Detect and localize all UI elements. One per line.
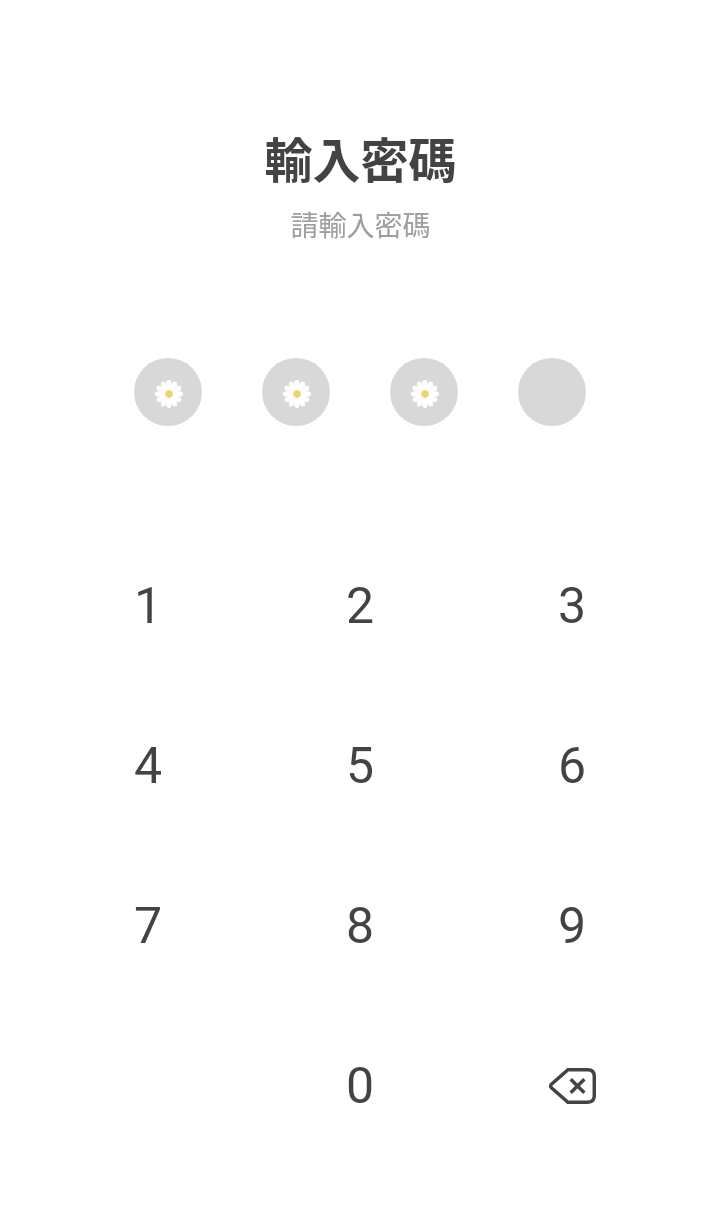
- staticText: 8: [346, 897, 375, 956]
- staticText: 9: [558, 897, 587, 956]
- button[interactable]: 7: [42, 846, 254, 1006]
- staticText: 2: [346, 577, 375, 636]
- button[interactable]: 2: [254, 526, 466, 686]
- button[interactable]: 0: [254, 1006, 466, 1166]
- other: Backspace: [548, 1068, 596, 1104]
- staticText: 5: [346, 737, 375, 796]
- button[interactable]: 1: [42, 526, 254, 686]
- button[interactable]: 4: [42, 686, 254, 846]
- staticText: 請輸入密碼: [290, 204, 431, 245]
- staticText: 7: [134, 897, 163, 956]
- staticText: 3: [558, 577, 587, 636]
- button[interactable]: 3: [466, 526, 678, 686]
- staticText: 1: [134, 577, 163, 636]
- staticText: 輸入密碼: [264, 122, 457, 192]
- button[interactable]: 9: [466, 846, 678, 1006]
- button[interactable]: 8: [254, 846, 466, 1006]
- button[interactable]: Backspace: [466, 1006, 678, 1166]
- button[interactable]: 6: [466, 686, 678, 846]
- button[interactable]: 5: [254, 686, 466, 846]
- staticText: 4: [134, 737, 163, 796]
- staticText: 0: [346, 1057, 375, 1116]
- staticText: 6: [558, 737, 587, 796]
